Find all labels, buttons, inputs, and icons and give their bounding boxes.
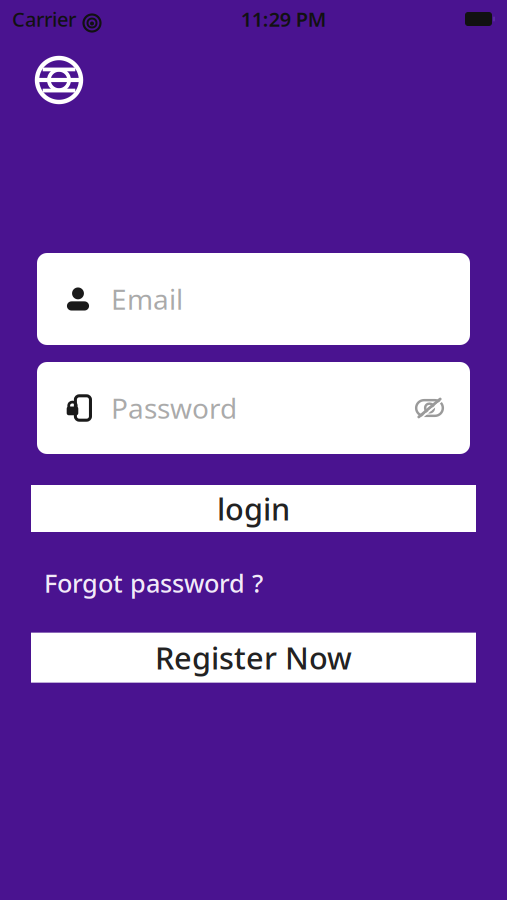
staticText: login xyxy=(217,488,290,529)
staticText: Email xyxy=(111,280,183,318)
staticText: Register Now xyxy=(155,637,352,678)
staticText: Password xyxy=(111,389,237,427)
staticText: 11:29 PM xyxy=(241,6,327,32)
button[interactable]: Show password xyxy=(411,389,448,426)
button[interactable]: Register Now xyxy=(31,633,476,683)
button[interactable]: Email xyxy=(37,253,470,345)
button[interactable]: Change language xyxy=(29,50,89,110)
button[interactable]: login xyxy=(31,485,476,532)
staticText: Carrier xyxy=(12,6,76,32)
button[interactable]: Forgot password ? xyxy=(44,566,263,600)
staticText: Forgot password ? xyxy=(44,566,263,600)
